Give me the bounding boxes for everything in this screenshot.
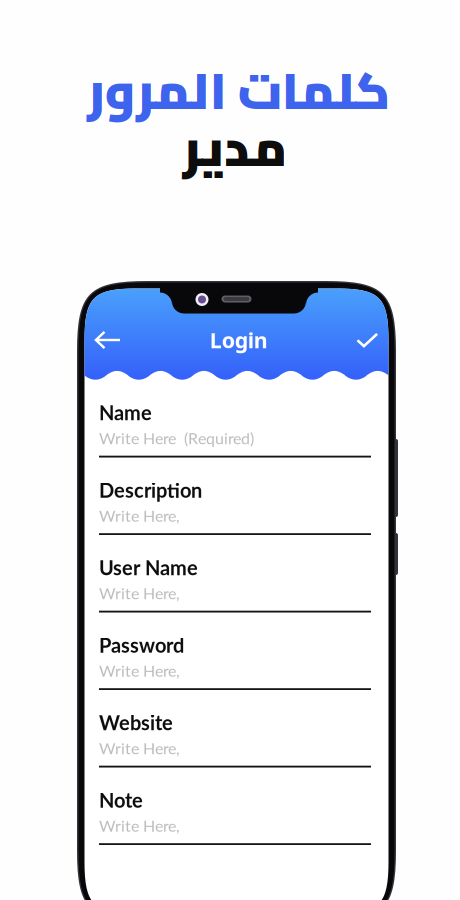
staticText: Write Here,	[99, 738, 180, 758]
button[interactable]: User Name	[99, 555, 371, 612]
staticText: Name	[99, 400, 152, 424]
button[interactable]: Back	[85, 321, 130, 358]
staticText: User Name	[99, 555, 198, 579]
staticText: Write Here,	[99, 583, 180, 603]
staticText: Website	[99, 710, 173, 734]
staticText: Write Here,	[99, 506, 180, 525]
staticText: مدير	[181, 100, 286, 195]
button[interactable]: Website	[99, 710, 371, 767]
button[interactable]: Note	[99, 788, 371, 845]
button[interactable]: Save	[347, 323, 387, 356]
staticText: كلمات المرور	[86, 43, 390, 138]
button[interactable]: Name	[99, 400, 371, 457]
staticText: Password	[99, 633, 184, 657]
staticText: Note	[99, 788, 143, 812]
staticText: Write Here,	[99, 661, 180, 680]
staticText: Write Here,	[99, 816, 180, 835]
button[interactable]: Password	[99, 633, 371, 690]
staticText: Login	[210, 326, 268, 354]
staticText: Write Here (Required)	[99, 428, 254, 448]
button[interactable]: Description	[99, 478, 371, 535]
staticText: Description	[99, 478, 202, 502]
